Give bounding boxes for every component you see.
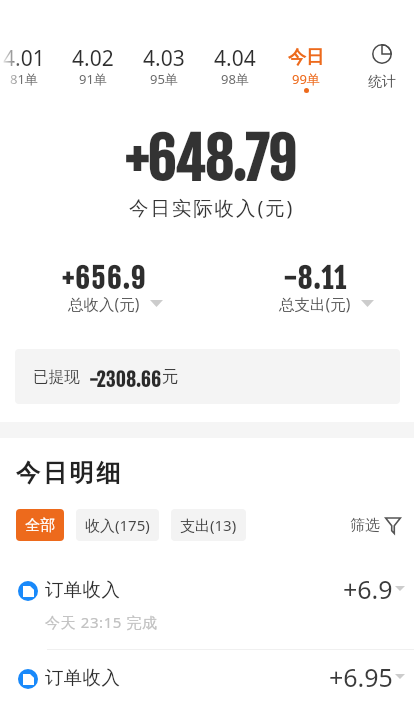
button[interactable]: 订单收入 <box>0 667 414 705</box>
button[interactable]: 4.01 <box>0 44 59 96</box>
staticText: 95单 <box>150 70 178 88</box>
staticText: 订单收入 <box>45 578 121 601</box>
staticText: 今天 23:15 完成 <box>45 612 158 632</box>
staticText: 订单收入 <box>45 666 121 689</box>
staticText: 今日明细 <box>16 458 124 488</box>
staticText: 81单 <box>10 70 38 88</box>
staticText: 收入(175) <box>85 515 150 535</box>
button[interactable]: 统计 <box>354 44 409 94</box>
staticText: 总支出(元) <box>279 293 351 314</box>
staticText: −2308.66 <box>89 368 162 392</box>
button[interactable]: −8.11 <box>240 261 390 319</box>
button[interactable]: 4.03 <box>129 44 199 96</box>
button[interactable]: 已提现 <box>15 349 400 404</box>
staticText: +6.95 <box>329 660 393 694</box>
button[interactable]: 收入(175) <box>76 509 159 541</box>
staticText: 统计 <box>368 73 396 91</box>
staticText: 4.01 <box>3 44 45 73</box>
button[interactable]: 支出(13) <box>171 509 246 541</box>
button[interactable]: 订单收入 <box>0 579 414 647</box>
button[interactable]: 4.04 <box>200 44 270 96</box>
staticText: 支出(13) <box>180 515 237 535</box>
staticText: 今日 <box>288 46 324 69</box>
staticText: 4.04 <box>214 44 256 73</box>
staticText: +656.9 <box>62 261 147 296</box>
staticText: 4.03 <box>143 44 185 73</box>
button[interactable]: 全部 <box>16 509 64 541</box>
staticText: 99单 <box>292 70 320 88</box>
staticText: 筛选 <box>350 516 380 535</box>
staticText: +6.9 <box>343 572 393 606</box>
button[interactable]: 筛选 <box>350 509 401 541</box>
staticText: 全部 <box>25 516 55 535</box>
button[interactable]: 今日 <box>271 44 341 96</box>
staticText: 91单 <box>79 70 107 88</box>
button[interactable]: +656.9 <box>29 261 179 319</box>
staticText: 4.02 <box>72 44 114 73</box>
staticText: +648.79 <box>125 125 296 195</box>
staticText: 总收入(元) <box>68 293 140 314</box>
staticText: 今日实际收入(元) <box>129 194 295 221</box>
staticText: 98单 <box>221 70 249 88</box>
staticText: 已提现 <box>33 367 80 387</box>
staticText: −8.11 <box>283 261 348 296</box>
staticText: 元 <box>162 366 179 387</box>
button[interactable]: 4.02 <box>58 44 128 96</box>
